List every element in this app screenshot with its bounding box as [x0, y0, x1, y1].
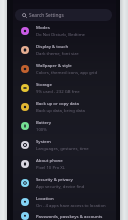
button[interactable]: Location — [7, 192, 120, 211]
staticText: Battery — [36, 119, 52, 125]
staticText: Back up or copy data — [36, 100, 79, 106]
staticText: Display & touch — [36, 43, 69, 49]
staticText: Do Not Disturb, Bedtime — [36, 31, 86, 37]
button[interactable]: Battery — [7, 116, 120, 135]
button[interactable]: Back up or copy data — [7, 97, 120, 116]
staticText: Back up data, bring data — [36, 107, 85, 113]
button[interactable]: Security & privacy — [7, 173, 120, 192]
staticText: Search Settings — [29, 12, 64, 19]
staticText: App security, device find — [36, 183, 85, 189]
staticText: Security & privacy — [36, 176, 73, 182]
staticText: System — [36, 138, 51, 144]
button[interactable]: Storage — [7, 78, 120, 97]
staticText: Location — [36, 195, 54, 201]
staticText: Modes — [36, 24, 50, 30]
button[interactable]: About phone — [7, 154, 120, 173]
button[interactable]: Modes — [7, 21, 120, 40]
button[interactable]: Passwords, passkeys & accounts — [7, 211, 120, 220]
staticText: About phone — [36, 157, 63, 163]
staticText: Storage — [36, 81, 52, 87]
staticText: Languages, gestures, time — [36, 145, 89, 151]
staticText: On - 4 apps have access to location — [36, 202, 106, 208]
staticText: Passwords, passkeys & accounts — [36, 213, 103, 219]
staticText: Pixel 10 Pro XL — [36, 164, 66, 170]
staticText: 9% used - 232 GB free — [36, 88, 80, 94]
staticText: Colors, themed icons, app grid — [36, 69, 98, 75]
staticText: Dark theme, font size — [36, 50, 79, 56]
staticText: 100% — [36, 126, 47, 132]
button[interactable]: Search Settings — [15, 9, 112, 21]
button[interactable]: System — [7, 135, 120, 154]
staticText: Wallpaper & style — [36, 62, 72, 68]
button[interactable]: Display & touch — [7, 40, 120, 59]
button[interactable]: Wallpaper & style — [7, 59, 120, 78]
